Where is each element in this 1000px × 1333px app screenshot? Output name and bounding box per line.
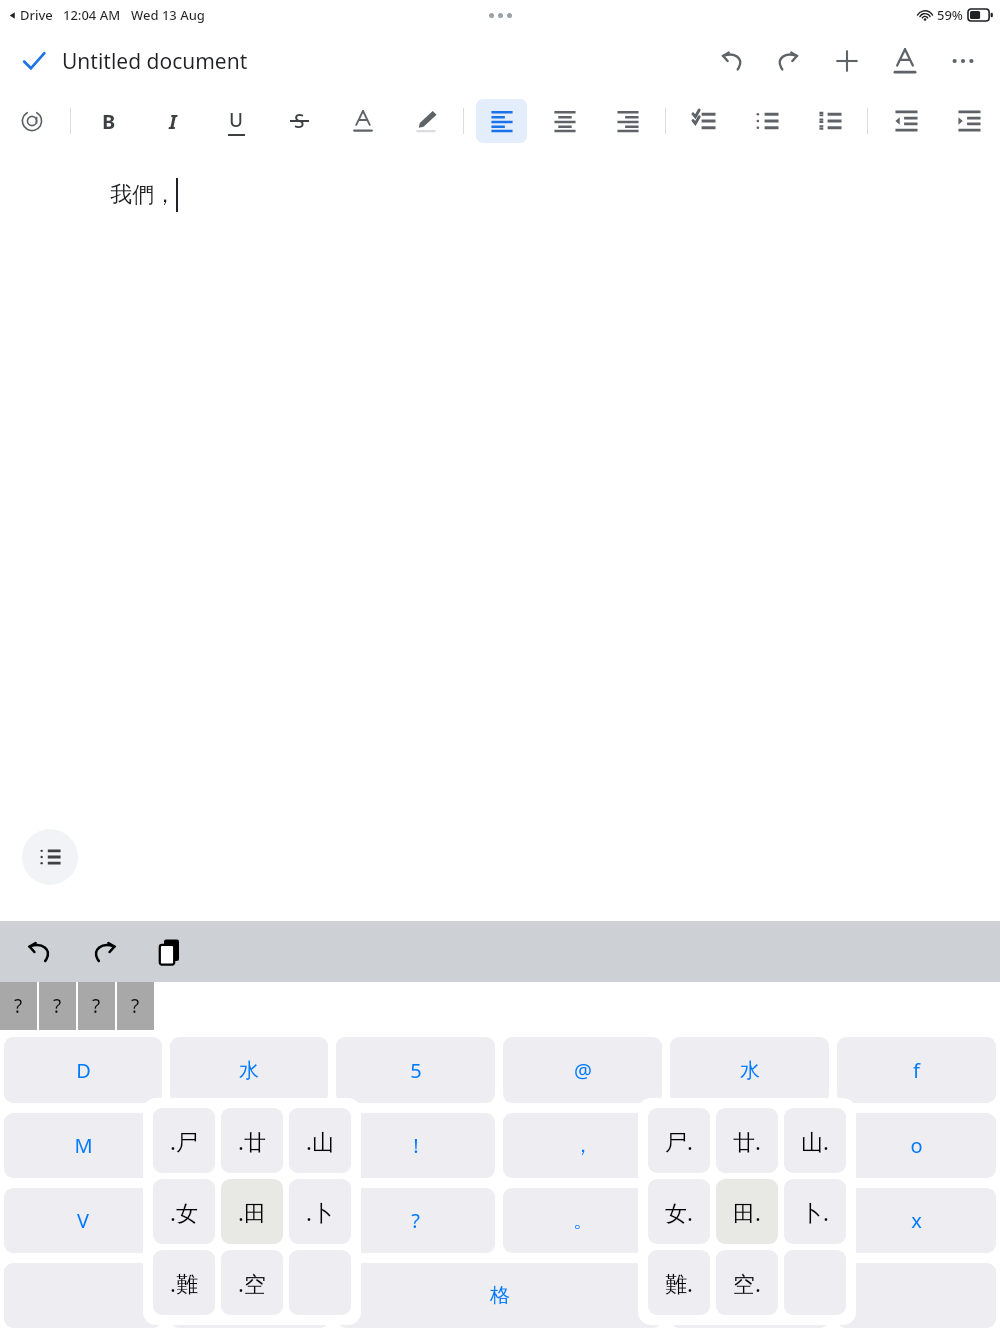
button[interactable]: 水 xyxy=(670,1037,829,1103)
button[interactable]: ， xyxy=(503,1113,662,1178)
staticText: U xyxy=(229,107,244,133)
staticText: x xyxy=(911,1207,922,1234)
button[interactable]: D xyxy=(4,1037,162,1103)
button[interactable]: .尸 xyxy=(153,1108,215,1173)
button[interactable]: Text color xyxy=(337,99,388,143)
button[interactable]: Redo xyxy=(84,930,128,974)
button[interactable]: 水 xyxy=(170,1037,328,1103)
button[interactable]: 廿 xyxy=(670,1113,829,1178)
button[interactable]: x xyxy=(837,1188,996,1253)
button[interactable]: I xyxy=(141,99,205,143)
staticText: .廿 xyxy=(238,1126,266,1156)
button[interactable]: 田. xyxy=(716,1179,778,1244)
staticText: .卜 xyxy=(306,1197,334,1227)
button[interactable]: U xyxy=(205,99,268,143)
staticText: 田 xyxy=(740,1208,760,1233)
button[interactable]: S xyxy=(268,99,331,143)
button[interactable]: f xyxy=(837,1037,996,1103)
button[interactable] xyxy=(670,1263,829,1328)
staticText: M xyxy=(74,1132,93,1159)
staticText: ， xyxy=(573,1133,593,1158)
button[interactable]: Done xyxy=(10,37,58,85)
button[interactable]: .難 xyxy=(153,1250,215,1315)
button[interactable]: ? xyxy=(117,982,154,1030)
button[interactable]: Highlight xyxy=(400,99,451,143)
button[interactable]: Text formatting xyxy=(876,32,934,90)
button[interactable]: Insert mention xyxy=(6,99,58,143)
button[interactable]: .空 xyxy=(221,1250,283,1315)
button[interactable]: ! xyxy=(336,1113,495,1178)
button[interactable] xyxy=(4,1263,162,1328)
button[interactable]: Align left xyxy=(476,99,527,143)
staticText: f xyxy=(913,1057,920,1084)
button[interactable]: ? xyxy=(0,982,37,1030)
staticText: .山 xyxy=(306,1126,334,1156)
button[interactable]: 廿. xyxy=(716,1108,778,1173)
button[interactable]: Numbered list xyxy=(804,99,855,143)
staticText: 廿 xyxy=(740,1133,760,1158)
button[interactable]: .卜 xyxy=(289,1179,351,1244)
button[interactable]: Untitled document xyxy=(62,47,248,76)
staticText: Wed 13 Aug xyxy=(131,6,205,24)
button[interactable]: o xyxy=(837,1113,996,1178)
button[interactable]: Align center xyxy=(539,99,590,143)
button[interactable]: 廿 xyxy=(170,1113,328,1178)
button[interactable]: V xyxy=(4,1188,162,1253)
button[interactable]: @ xyxy=(503,1037,662,1103)
button[interactable] xyxy=(170,1263,329,1328)
button[interactable]: M xyxy=(4,1113,162,1178)
button[interactable]: ? xyxy=(39,982,76,1030)
staticText: 廿. xyxy=(733,1126,761,1156)
button[interactable]: Document outline xyxy=(22,829,78,885)
button[interactable]: 女. xyxy=(648,1179,710,1244)
button[interactable]: Paste xyxy=(148,930,192,974)
button[interactable]: ? xyxy=(336,1188,495,1253)
button[interactable]: Increase indent xyxy=(943,99,994,143)
button[interactable]: ? xyxy=(78,982,115,1030)
button[interactable] xyxy=(837,1263,996,1328)
button[interactable]: 卜. xyxy=(784,1179,846,1244)
button[interactable]: .山 xyxy=(289,1108,351,1173)
staticText: 田. xyxy=(733,1197,761,1227)
staticText: .田 xyxy=(238,1197,266,1227)
staticText: ? xyxy=(411,1207,420,1234)
staticText: 格 xyxy=(490,1283,510,1308)
button[interactable]: 5 xyxy=(336,1037,495,1103)
button[interactable]: Decrease indent xyxy=(880,99,931,143)
button[interactable]: Undo xyxy=(702,32,760,90)
button[interactable]: 。 xyxy=(503,1188,662,1253)
staticText: 女. xyxy=(665,1197,693,1227)
button[interactable]: 空. xyxy=(716,1250,778,1315)
button[interactable]: .田 xyxy=(221,1179,283,1244)
button[interactable]: B xyxy=(77,99,141,143)
button[interactable]: Bulleted list xyxy=(741,99,792,143)
staticText: 我們， xyxy=(110,181,176,209)
staticText: 59% xyxy=(937,6,963,24)
button[interactable]: 山. xyxy=(784,1108,846,1173)
staticText: .難 xyxy=(170,1268,198,1298)
button[interactable]: 田 xyxy=(670,1188,829,1253)
staticText: 尸. xyxy=(665,1126,693,1156)
staticText: ? xyxy=(14,993,23,1019)
button[interactable]: 格 xyxy=(337,1263,662,1328)
button[interactable]: Undo xyxy=(16,930,60,974)
button[interactable]: Insert xyxy=(818,32,876,90)
staticText: 廿 xyxy=(239,1133,259,1158)
button[interactable]: 田 xyxy=(170,1188,328,1253)
button[interactable]: Checklist xyxy=(678,99,729,143)
button[interactable]: 尸. xyxy=(648,1108,710,1173)
staticText: 5 xyxy=(410,1057,422,1084)
staticText: ? xyxy=(131,993,140,1019)
button[interactable]: .廿 xyxy=(221,1108,283,1173)
button[interactable]: .女 xyxy=(153,1179,215,1244)
button[interactable]: More options xyxy=(934,32,992,90)
button[interactable]: 難. xyxy=(648,1250,710,1315)
staticText: @ xyxy=(574,1057,592,1084)
button[interactable]: Align right xyxy=(602,99,653,143)
button[interactable]: Redo xyxy=(760,32,818,90)
staticText: 田 xyxy=(239,1208,259,1233)
staticText: 難. xyxy=(665,1268,693,1298)
staticText: o xyxy=(910,1132,923,1159)
